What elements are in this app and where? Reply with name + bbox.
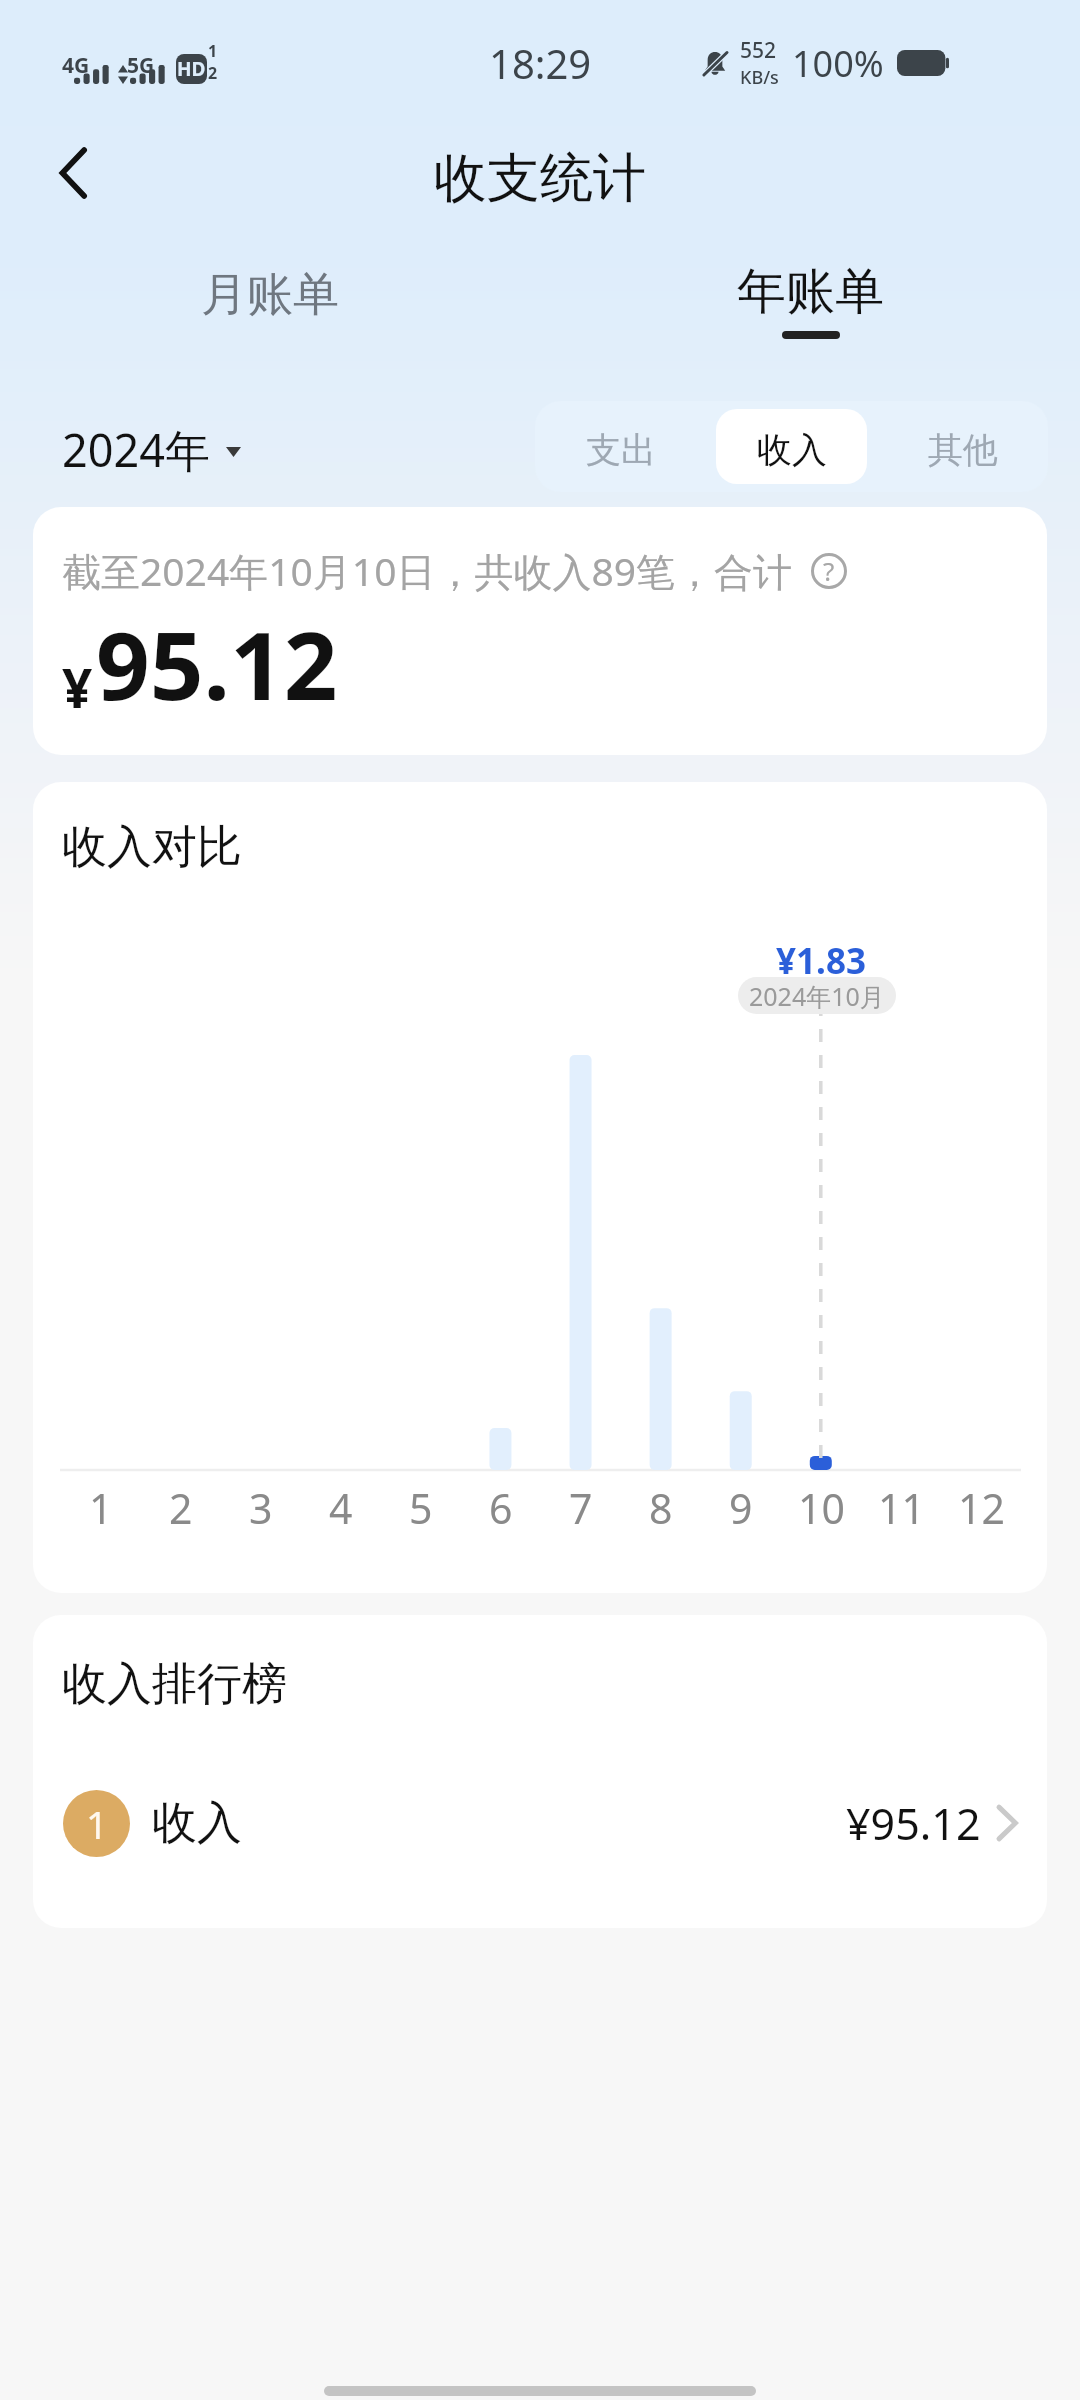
staticText: HD (177, 56, 206, 82)
staticText: 收支统计 (434, 145, 646, 212)
staticText: 4 (329, 1480, 353, 1536)
button[interactable]: 支出 (545, 409, 696, 484)
staticText: 2024年 (62, 419, 210, 480)
staticText: ¥ (62, 651, 93, 723)
staticText: 95.12 (96, 600, 338, 728)
staticText: 2 (208, 62, 218, 84)
staticText: 收入对比 (62, 819, 242, 876)
staticText: 2 (169, 1480, 193, 1536)
staticText: KB/s (740, 65, 779, 90)
button[interactable]: 年账单 (540, 233, 1080, 389)
button[interactable]: Back (31, 131, 115, 215)
button[interactable]: 1 (33, 1768, 1047, 1878)
staticText: 收入 (152, 1795, 242, 1852)
staticText: 年账单 (737, 261, 884, 323)
staticText: 8 (649, 1480, 673, 1536)
staticText: 1 (89, 1480, 113, 1536)
staticText: 18:29 (489, 36, 592, 90)
button[interactable]: 收入 (716, 409, 867, 484)
button[interactable]: 2024年 (62, 419, 241, 480)
staticText: ¥95.12 (846, 1794, 981, 1853)
staticText: 2024年10月 (749, 979, 885, 1013)
staticText: ? (823, 553, 835, 588)
staticText: 收入 (757, 428, 827, 472)
staticText: 支出 (586, 428, 656, 472)
button[interactable]: 截至2024年10月10日，共收入89笔，合计 (33, 507, 1047, 755)
staticText: 1 (86, 1798, 108, 1850)
staticText: 6 (489, 1480, 513, 1536)
button[interactable]: 月账单 (0, 233, 540, 389)
staticText: 月账单 (201, 266, 339, 324)
staticText: 截至2024年10月10日，共收入89笔，合计 (62, 544, 793, 597)
staticText: 4G (62, 51, 90, 80)
staticText: 5 (409, 1480, 433, 1536)
staticText: 12 (958, 1480, 1005, 1536)
staticText: 9 (729, 1480, 753, 1536)
staticText: ¥1.83 (776, 937, 866, 985)
staticText: 其他 (928, 428, 998, 472)
staticText: 收入排行榜 (62, 1656, 287, 1713)
staticText: 10 (798, 1480, 845, 1536)
staticText: 552 (740, 36, 777, 65)
button[interactable]: 其他 (887, 409, 1038, 484)
staticText: 1 (208, 40, 218, 62)
staticText: 7 (569, 1480, 593, 1536)
staticText: 100% (792, 39, 884, 88)
staticText: 3 (249, 1480, 273, 1536)
staticText: 5G (127, 51, 155, 80)
staticText: 11 (878, 1480, 925, 1536)
